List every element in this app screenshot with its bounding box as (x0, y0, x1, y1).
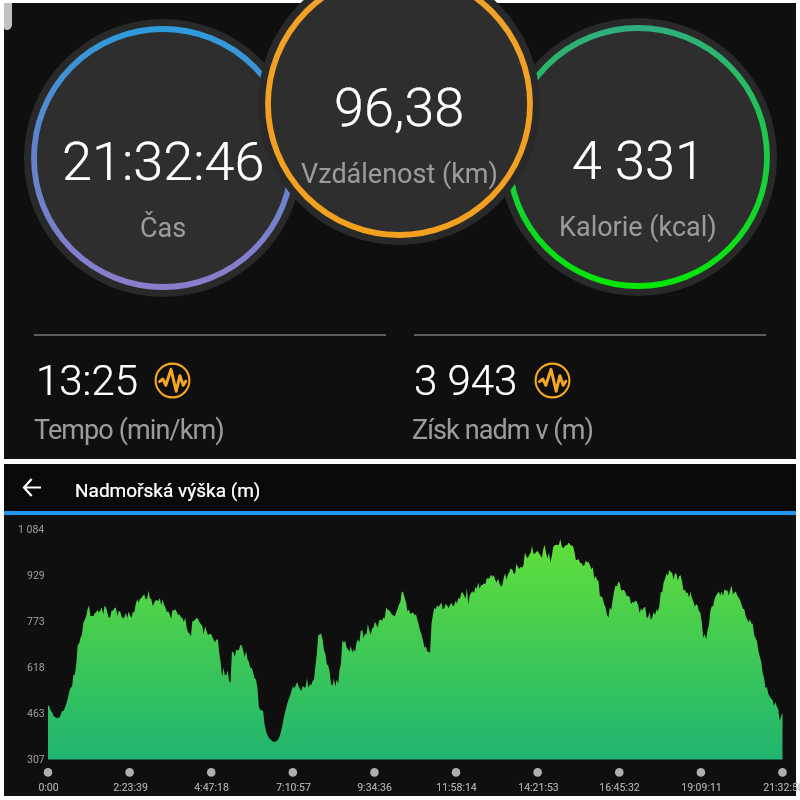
staticText: 1 084 (18, 523, 45, 535)
staticText: Kalorie (kcal) (559, 211, 717, 243)
staticText: 11:58:14 (436, 781, 477, 793)
staticText: 307 (27, 753, 45, 765)
staticText: 618 (27, 661, 45, 673)
staticText: 4 331 (572, 129, 705, 192)
staticText: 463 (27, 707, 45, 719)
staticText: 13:25 (36, 356, 139, 405)
staticText: 773 (27, 615, 45, 627)
staticText: Tempo (min/km) (34, 414, 224, 446)
staticText: 19:09:11 (681, 781, 722, 793)
staticText: Vzdálenost (km) (301, 158, 498, 190)
button[interactable]: Back (16, 471, 49, 504)
staticText: 4:47:18 (194, 781, 229, 793)
staticText: 16:45:32 (599, 781, 640, 793)
staticText: 9:34:36 (357, 781, 392, 793)
staticText: Získ nadm v (m) (412, 414, 593, 446)
staticText: 21:32:50 (763, 781, 800, 793)
staticText: 929 (27, 569, 45, 581)
staticText: 2:23:39 (113, 781, 148, 793)
staticText: Čas (140, 212, 187, 244)
staticText: 3 943 (414, 356, 518, 405)
staticText: Nadmořská výška (m) (75, 479, 261, 501)
staticText: 7:10:57 (276, 781, 311, 793)
staticText: 96,38 (334, 76, 465, 139)
staticText: 14:21:53 (518, 781, 559, 793)
staticText: 21:32:46 (62, 130, 265, 193)
staticText: 0:00 (38, 781, 59, 793)
